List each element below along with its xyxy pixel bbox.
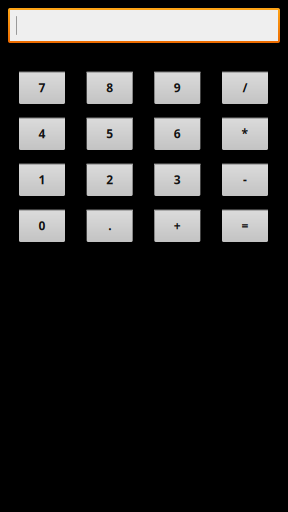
staticText: -: [243, 171, 247, 187]
button[interactable]: 9: [154, 71, 200, 104]
staticText: .: [108, 217, 111, 233]
staticText: 5: [106, 125, 113, 141]
staticText: 1: [38, 171, 45, 187]
button[interactable]: Expression field: [0, 0, 280, 43]
button[interactable]: -: [222, 163, 268, 196]
staticText: 4: [38, 125, 45, 141]
staticText: 9: [174, 79, 181, 95]
button[interactable]: 5: [87, 117, 133, 150]
button[interactable]: 8: [87, 71, 133, 104]
button[interactable]: +: [154, 209, 200, 242]
button[interactable]: 6: [154, 117, 200, 150]
button[interactable]: *: [222, 117, 268, 150]
button[interactable]: 3: [154, 163, 200, 196]
staticText: 3: [174, 171, 181, 187]
button[interactable]: 1: [19, 163, 65, 196]
staticText: 2: [106, 171, 113, 187]
staticText: 8: [106, 79, 113, 95]
staticText: *: [241, 125, 248, 141]
staticText: 7: [38, 79, 45, 95]
button[interactable]: .: [87, 209, 133, 242]
button[interactable]: =: [222, 209, 268, 242]
staticText: /: [242, 79, 247, 95]
staticText: 6: [174, 125, 181, 141]
button[interactable]: 7: [19, 71, 65, 104]
staticText: +: [174, 217, 181, 233]
button[interactable]: /: [222, 71, 268, 104]
button[interactable]: 2: [87, 163, 133, 196]
button[interactable]: 4: [19, 117, 65, 150]
button[interactable]: 0: [19, 209, 65, 242]
staticText: =: [241, 217, 248, 233]
staticText: 0: [38, 217, 45, 233]
